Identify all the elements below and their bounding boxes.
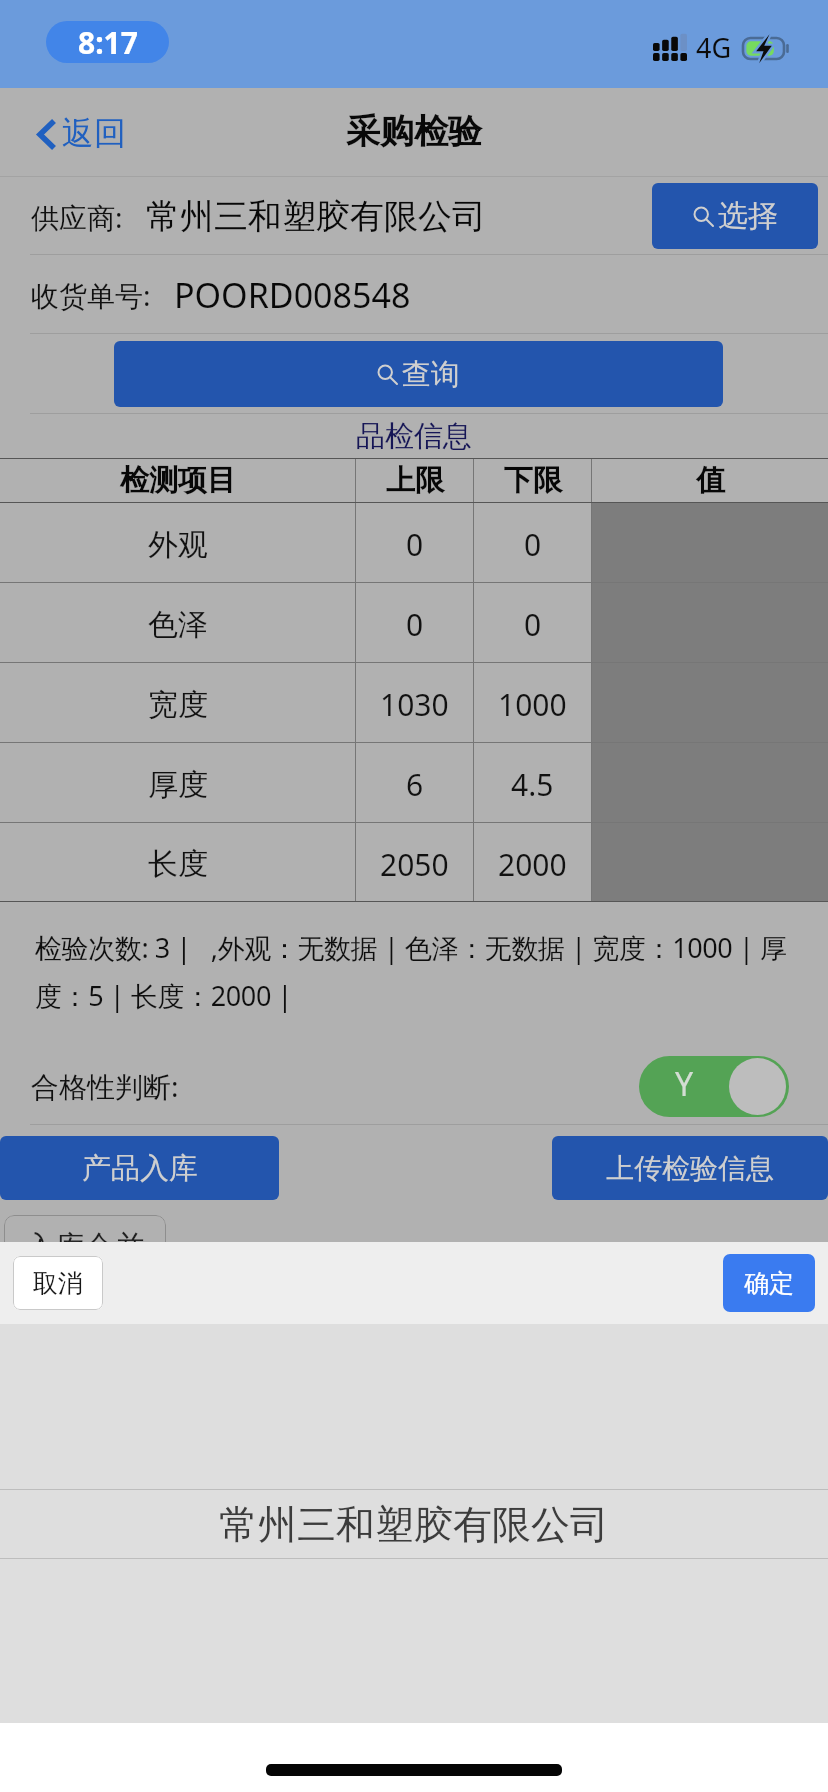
staticText: 宽度 xyxy=(148,686,208,724)
staticText: 色泽 xyxy=(148,606,208,644)
staticText: 0 xyxy=(524,524,542,565)
staticText: 检测项目 xyxy=(120,462,236,499)
staticText: Y xyxy=(675,1062,694,1106)
button[interactable]: 上传检验信息 xyxy=(552,1136,828,1200)
staticText: 下限 xyxy=(504,462,562,499)
staticText: 收货单号: xyxy=(31,276,151,314)
staticText: 品检信息 xyxy=(356,418,472,455)
staticText: 取消 xyxy=(33,1268,83,1299)
staticText: 查询 xyxy=(402,356,460,393)
staticText: 0 xyxy=(406,604,424,645)
staticText: 常州三和塑胶有限公司 xyxy=(219,1500,609,1549)
button[interactable]: 查询 xyxy=(114,341,723,407)
staticText: 外观 xyxy=(148,526,208,564)
staticText: 2000 xyxy=(498,844,567,885)
staticText: 常州三和塑胶有限公司 xyxy=(146,195,486,238)
staticText: 选择 xyxy=(718,197,778,235)
staticText: POORD008548 xyxy=(174,272,411,318)
staticText: 长度 xyxy=(148,845,208,883)
staticText: 检验次数: 3 | ,外观：无数据 | 色泽：无数据 | 宽度：1000 | 厚… xyxy=(35,929,818,1014)
staticText: 1000 xyxy=(498,684,567,725)
staticText: 入库合并 xyxy=(25,1228,145,1266)
staticText: 合格性判断: xyxy=(31,1067,179,1105)
staticText: 0 xyxy=(524,604,542,645)
button[interactable]: 产品入库 xyxy=(0,1136,279,1200)
staticText: 2050 xyxy=(380,844,449,885)
staticText: 1030 xyxy=(380,684,449,725)
button[interactable]: 返回 xyxy=(0,103,138,163)
staticText: 返回 xyxy=(62,113,126,153)
staticText: 值 xyxy=(696,462,725,499)
staticText: 8:17 xyxy=(78,22,138,63)
staticText: 0 xyxy=(406,524,424,565)
staticText: 厚度 xyxy=(148,766,208,804)
button[interactable]: 取消 xyxy=(13,1256,103,1310)
button[interactable]: 选择 xyxy=(652,183,818,249)
staticText: 确定 xyxy=(744,1268,794,1299)
staticText: 采购检验 xyxy=(346,110,482,153)
staticText: 4.5 xyxy=(511,764,554,805)
staticText: 上限 xyxy=(386,462,444,499)
staticText: 供应商: xyxy=(31,198,123,236)
button[interactable]: 入库合并 xyxy=(4,1215,166,1279)
button[interactable]: 确定 xyxy=(723,1254,815,1312)
staticText: 4G xyxy=(696,29,732,66)
button[interactable]: Y xyxy=(639,1056,789,1117)
staticText: 6 xyxy=(406,764,424,805)
staticText: 上传检验信息 xyxy=(606,1151,774,1186)
staticText: 产品入库 xyxy=(82,1150,198,1187)
